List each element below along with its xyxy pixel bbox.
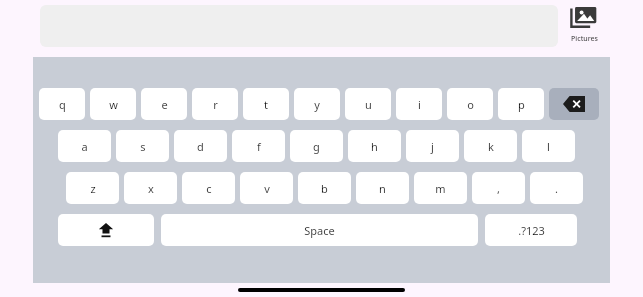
staticText: t <box>264 97 268 112</box>
button[interactable]: p <box>498 88 544 120</box>
button[interactable]: .?123 <box>485 214 577 246</box>
button[interactable]: i <box>396 88 442 120</box>
button[interactable]: c <box>182 172 235 204</box>
staticText: k <box>488 139 494 154</box>
staticText: l <box>547 139 550 154</box>
staticText: Pictures <box>571 34 598 44</box>
button[interactable]: f <box>232 130 285 162</box>
button[interactable]: e <box>141 88 187 120</box>
staticText: p <box>518 97 525 112</box>
staticText: o <box>467 97 474 112</box>
staticText: n <box>379 181 386 196</box>
staticText: m <box>435 181 446 196</box>
staticText: r <box>213 97 218 112</box>
button[interactable]: Backspace <box>549 88 599 120</box>
button[interactable]: d <box>174 130 227 162</box>
button[interactable]: k <box>464 130 517 162</box>
button[interactable]: b <box>298 172 351 204</box>
staticText: .?123 <box>518 223 545 238</box>
button[interactable]: x <box>124 172 177 204</box>
staticText: z <box>90 181 96 196</box>
staticText: h <box>371 139 378 154</box>
button[interactable]: , <box>472 172 525 204</box>
staticText: f <box>257 139 261 154</box>
button[interactable]: g <box>290 130 343 162</box>
button[interactable]: m <box>414 172 467 204</box>
button[interactable]: Space <box>161 214 478 246</box>
button[interactable]: n <box>356 172 409 204</box>
staticText: . <box>555 181 558 196</box>
button[interactable]: h <box>348 130 401 162</box>
staticText: i <box>418 97 421 112</box>
staticText: Space <box>304 223 335 238</box>
staticText: q <box>59 97 66 112</box>
button[interactable]: r <box>192 88 238 120</box>
staticText: j <box>431 139 434 154</box>
staticText: u <box>365 97 372 112</box>
staticText: x <box>148 181 154 196</box>
staticText: , <box>497 181 500 196</box>
staticText: e <box>161 97 168 112</box>
button[interactable]: z <box>66 172 119 204</box>
staticText: a <box>81 139 88 154</box>
button[interactable]: . <box>530 172 583 204</box>
staticText: b <box>321 181 328 196</box>
button[interactable]: Shift <box>58 214 154 246</box>
button[interactable]: j <box>406 130 459 162</box>
button[interactable]: t <box>243 88 289 120</box>
staticText: g <box>313 139 320 154</box>
staticText: y <box>314 97 320 112</box>
button[interactable]: y <box>294 88 340 120</box>
button[interactable]: w <box>90 88 136 120</box>
button[interactable]: s <box>116 130 169 162</box>
staticText: v <box>264 181 270 196</box>
button[interactable]: o <box>447 88 493 120</box>
button[interactable]: a <box>58 130 111 162</box>
staticText: s <box>140 139 146 154</box>
staticText: w <box>109 97 118 112</box>
button[interactable]: Pictures <box>562 2 606 52</box>
button[interactable]: u <box>345 88 391 120</box>
staticText: d <box>197 139 204 154</box>
button[interactable]: l <box>522 130 575 162</box>
button[interactable]: q <box>39 88 85 120</box>
staticText: c <box>206 181 212 196</box>
button[interactable]: v <box>240 172 293 204</box>
